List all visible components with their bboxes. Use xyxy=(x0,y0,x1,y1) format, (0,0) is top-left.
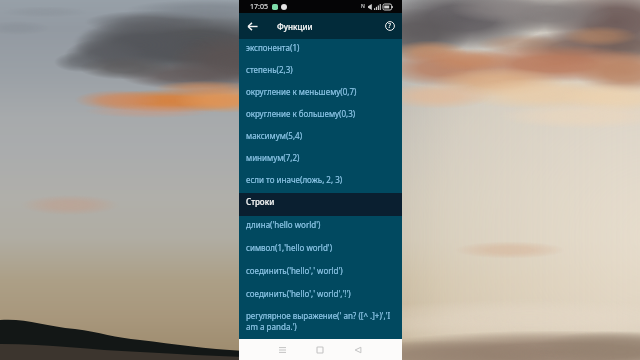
button[interactable]: Строки xyxy=(239,193,402,216)
staticText: округление к меньшему(0,7) xyxy=(246,86,357,97)
staticText: соединить('hello',' world','!') xyxy=(246,288,351,299)
button[interactable]: минимум(7,2) xyxy=(239,149,402,171)
button[interactable]: Home xyxy=(310,340,330,360)
staticText: регулярное выражение(' an? ([^ .]+)','I … xyxy=(246,310,397,332)
button[interactable]: округление к меньшему(0,7) xyxy=(239,83,402,105)
button[interactable]: Help xyxy=(383,19,397,33)
button[interactable]: округление к большему(0,3) xyxy=(239,105,402,127)
staticText: минимум(7,2) xyxy=(246,152,300,163)
staticText: N xyxy=(361,3,365,10)
button[interactable]: если то иначе(ложь, 2, 3) xyxy=(239,171,402,193)
staticText: максимум(5,4) xyxy=(246,130,303,141)
staticText: символ(1,'hello world') xyxy=(246,242,333,253)
button[interactable]: Back xyxy=(348,340,368,360)
button[interactable]: длина('hello world') xyxy=(239,216,402,239)
staticText: длина('hello world') xyxy=(246,219,321,230)
staticText: округление к большему(0,3) xyxy=(246,108,356,119)
button[interactable]: соединить('hello',' world','!') xyxy=(239,285,402,308)
button[interactable]: Back xyxy=(244,18,260,34)
staticText: Строки xyxy=(246,196,275,207)
button[interactable]: Recent apps xyxy=(272,340,292,360)
button[interactable]: соединить('hello',' world') xyxy=(239,262,402,285)
staticText: Функции xyxy=(277,21,313,32)
staticText: соединить('hello',' world') xyxy=(246,265,343,276)
staticText: экспонента(1) xyxy=(246,42,300,53)
button[interactable]: регулярное выражение(' an? ([^ .]+)','I … xyxy=(239,308,402,340)
staticText: ? xyxy=(388,21,392,31)
button[interactable]: символ(1,'hello world') xyxy=(239,239,402,262)
button[interactable]: максимум(5,4) xyxy=(239,127,402,149)
staticText: 17:05 xyxy=(250,2,268,12)
staticText: если то иначе(ложь, 2, 3) xyxy=(246,174,343,185)
staticText: степень(2,3) xyxy=(246,64,293,75)
button[interactable]: экспонента(1) xyxy=(239,39,402,61)
button[interactable]: степень(2,3) xyxy=(239,61,402,83)
